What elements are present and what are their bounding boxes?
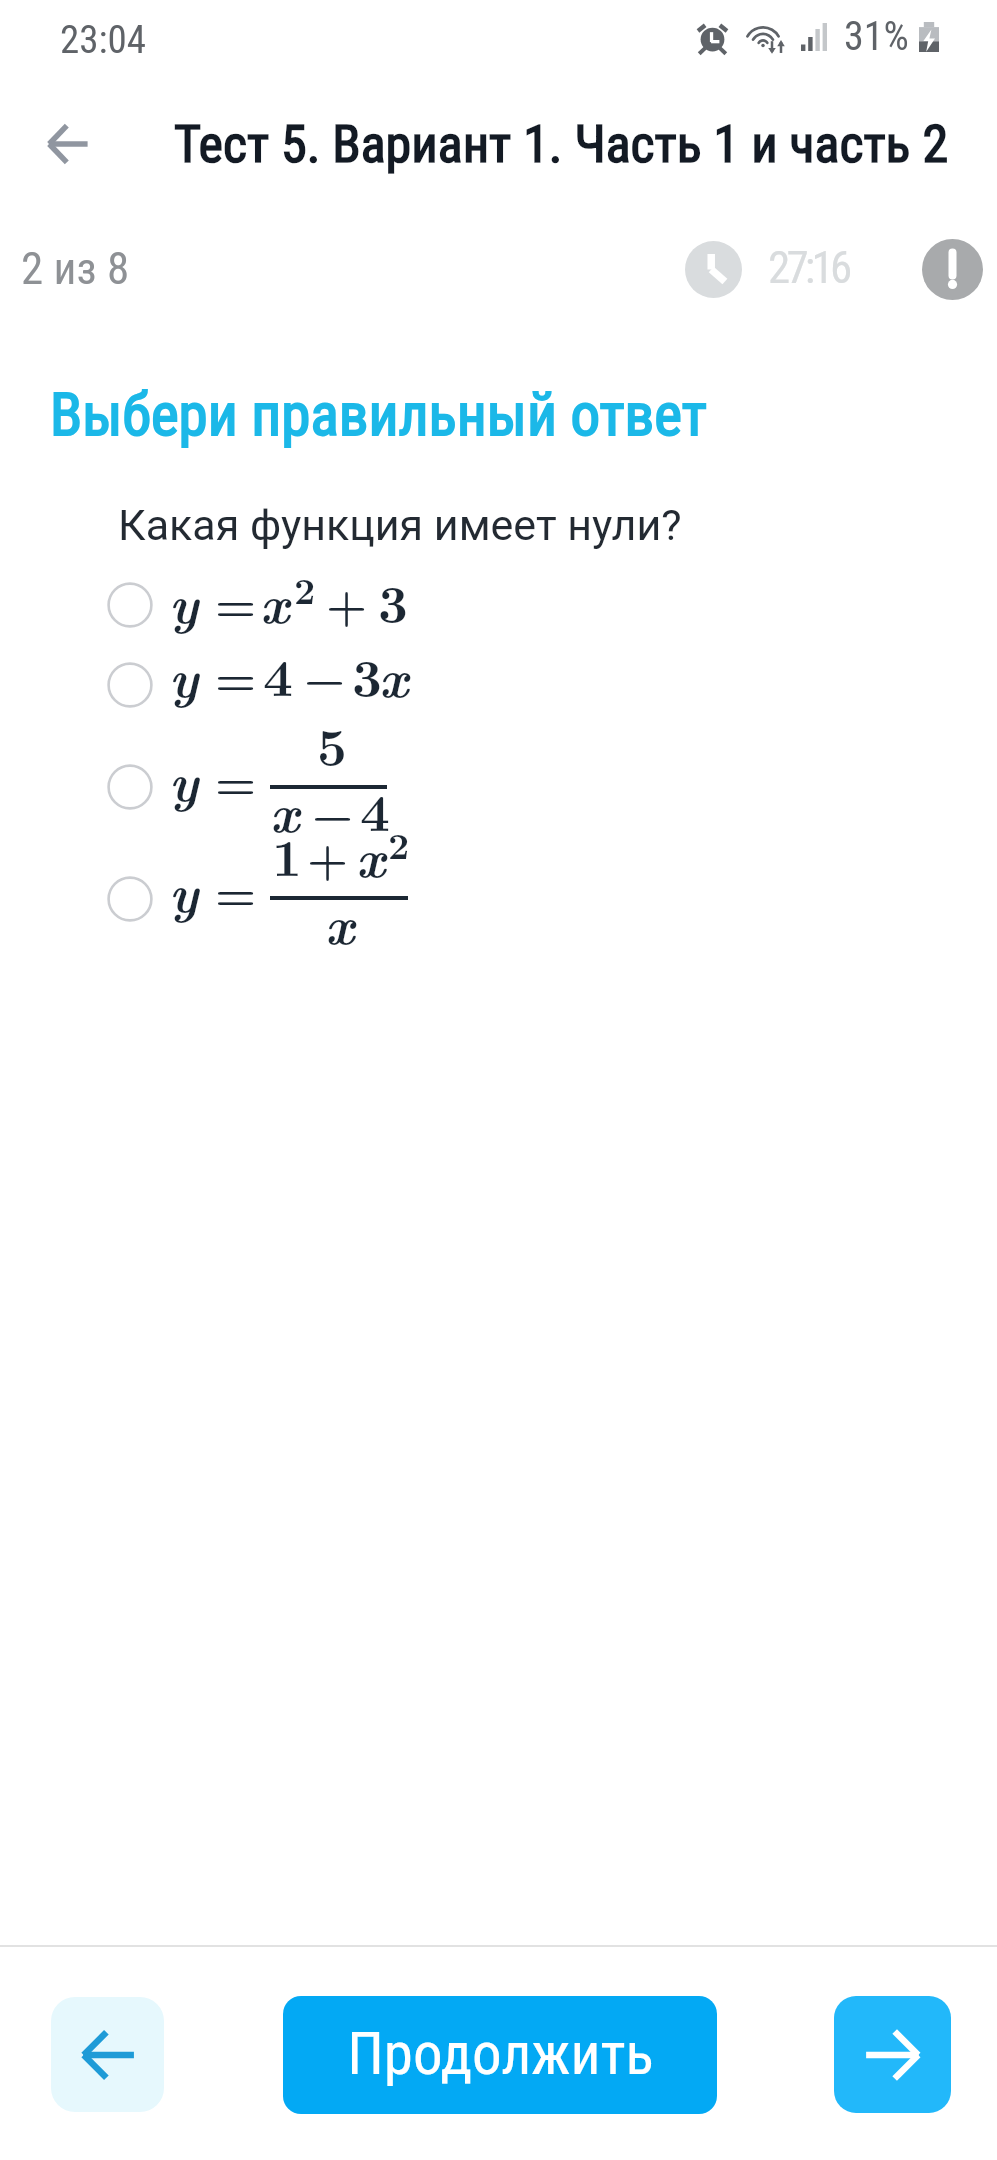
staticText: y xyxy=(169,563,199,639)
staticText: 31% xyxy=(844,13,909,60)
staticText: 2 xyxy=(294,562,316,615)
staticText: 3 xyxy=(352,637,382,711)
staticText: − xyxy=(304,643,346,709)
button[interactable]: Назад xyxy=(30,106,106,182)
staticText: = xyxy=(215,643,257,709)
staticText: 2 из 8 xyxy=(21,242,130,295)
staticText: x xyxy=(379,637,409,713)
staticText: x xyxy=(270,772,300,848)
button[interactable]: Назад xyxy=(51,1997,164,2112)
staticText: y xyxy=(169,637,199,713)
staticText: 4 xyxy=(263,637,293,711)
staticText: 1 xyxy=(272,817,302,891)
staticText: x xyxy=(260,563,290,639)
staticText: 3 xyxy=(378,563,408,637)
button[interactable]: Продолжить xyxy=(283,1996,717,2114)
staticText: 2 xyxy=(388,817,410,870)
staticText: = xyxy=(215,858,257,924)
staticText: + xyxy=(307,823,349,889)
staticText: = xyxy=(215,747,257,813)
staticText: Выбери правильный ответ xyxy=(50,380,707,449)
staticText: = xyxy=(215,569,257,635)
staticText: + xyxy=(326,569,368,635)
staticText: 23:04 xyxy=(60,17,147,63)
staticText: Продолжить xyxy=(347,2019,654,2088)
staticText: x xyxy=(356,817,386,893)
staticText: Какая функция имеет нули? xyxy=(118,500,682,550)
staticText: − xyxy=(312,779,354,845)
button[interactable]: Информация xyxy=(922,239,983,300)
staticText: y xyxy=(169,741,199,817)
staticText: 27:16 xyxy=(768,241,849,294)
staticText: 5 xyxy=(317,706,347,780)
staticText: 4 xyxy=(360,772,390,846)
staticText: Тест 5. Вариант 1. Часть 1 и часть 2 xyxy=(174,114,949,175)
staticText: y xyxy=(169,852,199,928)
button[interactable]: Вперёд xyxy=(834,1996,951,2113)
staticText: x xyxy=(325,884,355,960)
